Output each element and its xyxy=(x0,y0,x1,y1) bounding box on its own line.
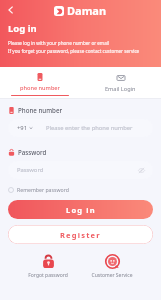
button[interactable]: Remember password xyxy=(8,186,69,193)
staticText: Email Login xyxy=(105,85,136,93)
staticText: If you forget your password, please cont… xyxy=(8,48,140,54)
staticText: Please log in with your phone number or … xyxy=(8,40,110,46)
button[interactable]: Customer Service xyxy=(87,253,137,280)
staticText: Daman xyxy=(67,3,107,18)
staticText: Customer Service xyxy=(91,272,133,279)
staticText: Password xyxy=(18,148,47,156)
staticText: phone number xyxy=(20,84,60,92)
button[interactable]: Forgot password xyxy=(24,253,72,280)
button[interactable]: Back xyxy=(2,1,20,19)
other: Customer Service xyxy=(105,254,120,269)
button[interactable]: Register xyxy=(8,225,153,244)
staticText: Log in xyxy=(8,22,37,35)
button[interactable]: +91 xyxy=(8,119,153,137)
staticText: Log in xyxy=(66,205,96,215)
other: Forgot password xyxy=(41,254,56,269)
button[interactable]: Show password xyxy=(134,163,148,177)
staticText: Password xyxy=(17,166,44,174)
staticText: Please enter the phone number xyxy=(46,124,133,132)
staticText: Register xyxy=(60,230,101,240)
staticText: Phone number xyxy=(18,106,63,114)
button[interactable]: phone number xyxy=(0,67,80,99)
staticText: +91 xyxy=(17,124,27,132)
button[interactable]: Email Login xyxy=(80,67,161,99)
button[interactable]: Log in xyxy=(8,200,153,219)
button[interactable]: Password xyxy=(8,161,153,179)
staticText: Remember password xyxy=(17,186,69,193)
staticText: Forgot password xyxy=(28,272,68,279)
